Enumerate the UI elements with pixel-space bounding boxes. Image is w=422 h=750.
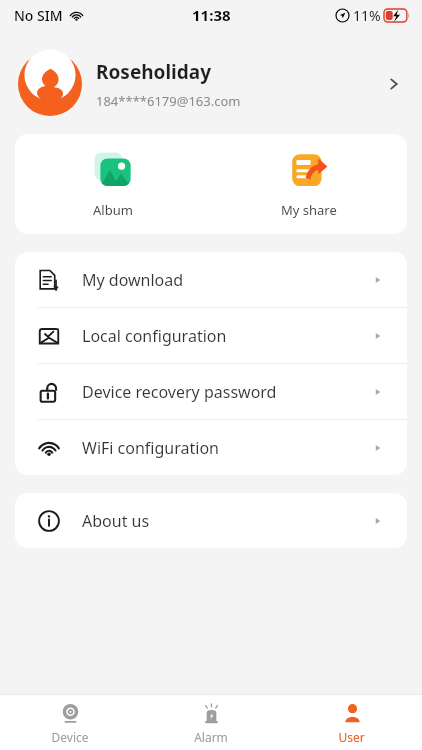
button[interactable]: Roseholiday	[0, 46, 422, 122]
other: Account details	[384, 74, 404, 94]
staticText: User	[338, 729, 365, 745]
button[interactable]: Local configuration	[15, 308, 407, 364]
staticText: Album	[93, 201, 133, 219]
button[interactable]: My download	[15, 252, 407, 308]
button[interactable]: Device	[0, 695, 140, 750]
button[interactable]: WiFi configuration	[15, 420, 407, 475]
staticText: My share	[281, 201, 337, 219]
staticText: 11:38	[192, 5, 231, 25]
staticText: Local configuration	[82, 325, 371, 347]
staticText: 11%	[353, 6, 381, 25]
button[interactable]: Alarm	[140, 695, 281, 750]
button[interactable]: User	[281, 695, 422, 750]
staticText: No SIM	[14, 6, 63, 25]
staticText: 184****6179@163.com	[96, 92, 241, 110]
button[interactable]: Device recovery password	[15, 364, 407, 420]
staticText: WiFi configuration	[82, 437, 371, 459]
staticText: Device	[51, 729, 89, 745]
button[interactable]: About us	[15, 493, 407, 548]
staticText: About us	[82, 510, 371, 532]
staticText: Roseholiday	[96, 59, 212, 85]
button[interactable]: My share	[211, 134, 407, 234]
button[interactable]: Album	[15, 134, 211, 234]
staticText: My download	[82, 269, 371, 291]
staticText: Device recovery password	[82, 381, 371, 403]
staticText: Alarm	[194, 729, 228, 745]
